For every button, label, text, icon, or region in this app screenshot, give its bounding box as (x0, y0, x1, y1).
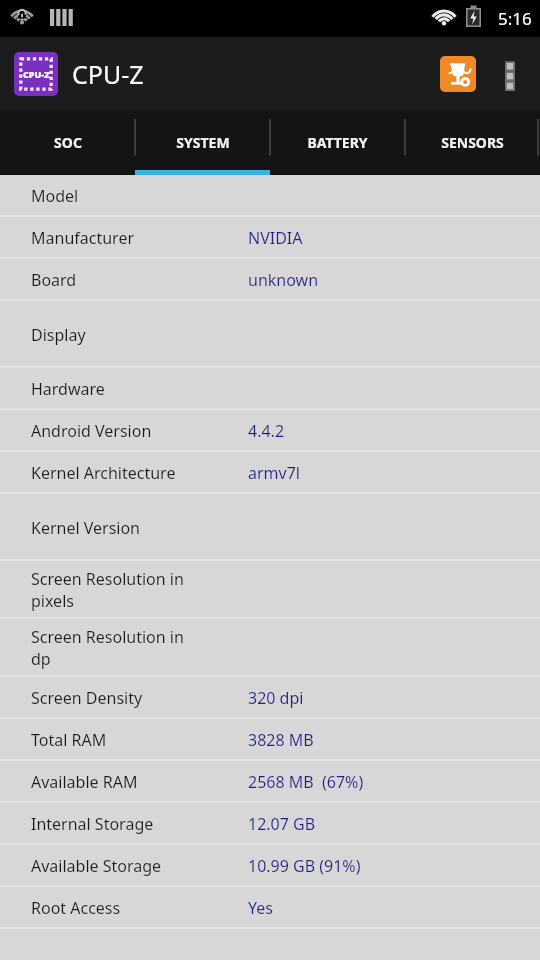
staticText: pixels (31, 590, 74, 612)
button[interactable]: More options (484, 48, 536, 100)
staticText: SYSTEM (176, 133, 230, 152)
staticText: Screen Density (31, 687, 143, 709)
button[interactable]: Hardware (0, 368, 540, 410)
button[interactable]: Internal Storage (0, 803, 540, 845)
button[interactable]: Available RAM (0, 761, 540, 803)
staticText: BATTERY (307, 133, 368, 152)
staticText: Screen Resolution in (31, 626, 184, 648)
button[interactable]: Screen Density (0, 677, 540, 719)
button[interactable]: Manufacturer (0, 217, 540, 259)
staticText: Display (31, 324, 86, 346)
staticText: Available Storage (31, 855, 162, 877)
button[interactable]: Kernel Architecture (0, 452, 540, 494)
staticText: SENSORS (441, 133, 504, 152)
staticText: 5:16 (498, 7, 532, 30)
button[interactable]: SOC (0, 110, 135, 175)
staticText: Root Access (31, 897, 121, 919)
button[interactable]: BATTERY (270, 110, 405, 175)
staticText: Model (31, 185, 79, 207)
staticText: Board (31, 269, 77, 291)
button[interactable]: Root Access (0, 887, 540, 929)
button[interactable]: SYSTEM (135, 110, 270, 175)
button[interactable]: Board (0, 259, 540, 301)
staticText: Android Version (31, 420, 152, 442)
button[interactable]: Display (0, 301, 540, 368)
staticText: SOC (54, 133, 82, 152)
staticText: CPU-Z (72, 57, 144, 91)
staticText: Screen Resolution in (31, 568, 184, 590)
button[interactable]: CPU-Z app icon (14, 52, 58, 96)
staticText: Internal Storage (31, 813, 154, 835)
button[interactable]: Benchmark ranking (432, 48, 484, 100)
staticText: Total RAM (31, 729, 107, 751)
button[interactable]: SENSORS (405, 110, 540, 175)
staticText: 3828 MB (248, 729, 314, 751)
staticText: 10.99 GB (91%) (248, 855, 361, 877)
staticText: unknown (248, 269, 319, 291)
staticText: Hardware (31, 378, 105, 400)
staticText: armv7l (248, 462, 300, 484)
staticText: Yes (248, 897, 273, 919)
button[interactable]: Android Version (0, 410, 540, 452)
staticText: 4.4.2 (248, 420, 285, 442)
staticText: 2568 MB (67%) (248, 771, 364, 793)
staticText: Manufacturer (31, 227, 135, 249)
staticText: 320 dpi (248, 687, 304, 709)
button[interactable]: Total RAM (0, 719, 540, 761)
staticText: 12.07 GB (248, 813, 316, 835)
staticText: Kernel Architecture (31, 462, 176, 484)
staticText: CPU-Z (23, 68, 50, 80)
button[interactable]: Screen Resolution in (0, 619, 540, 677)
button[interactable]: Available Storage (0, 845, 540, 887)
button[interactable]: Model (0, 175, 540, 217)
button[interactable]: Kernel Version (0, 494, 540, 561)
staticText: NVIDIA (248, 227, 303, 249)
staticText: Kernel Version (31, 517, 141, 539)
button[interactable]: Screen Resolution in (0, 561, 540, 619)
staticText: dp (31, 648, 51, 670)
staticText: Available RAM (31, 771, 138, 793)
